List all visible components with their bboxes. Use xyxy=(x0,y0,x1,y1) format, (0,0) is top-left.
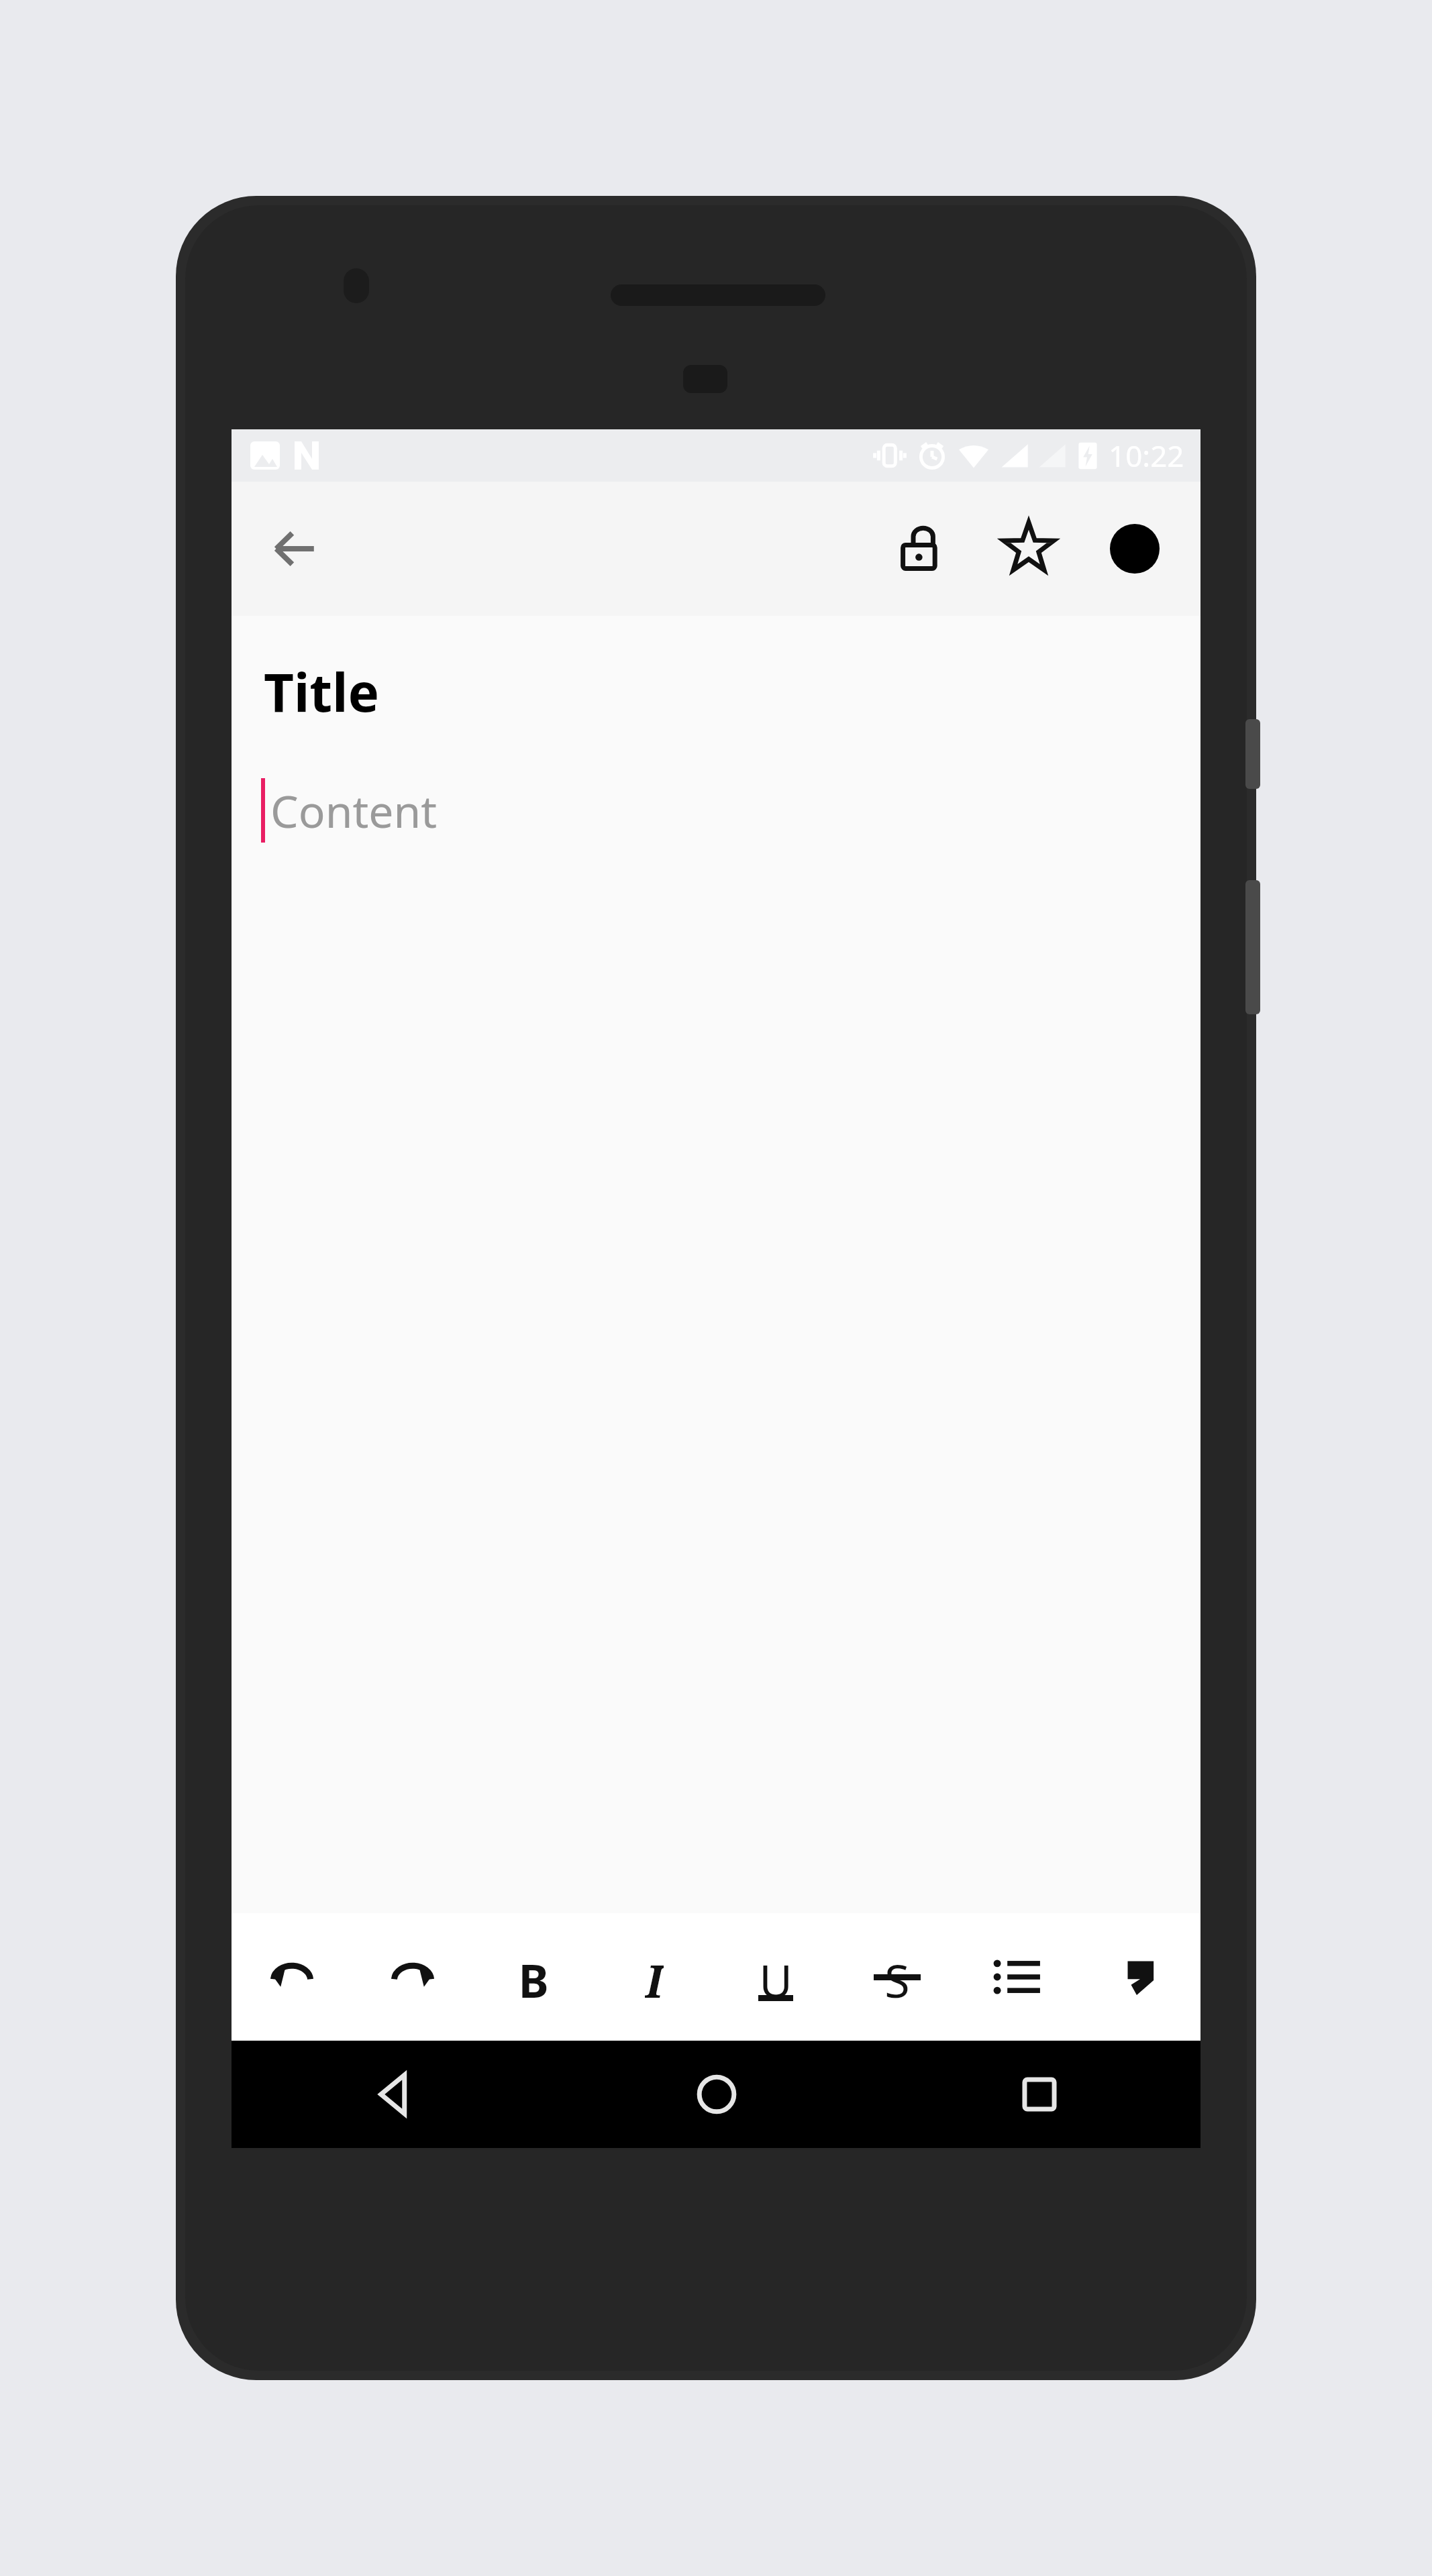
button[interactable]: Favorite xyxy=(982,502,1076,596)
button[interactable]: Title xyxy=(264,656,1168,727)
button[interactable]: Bold xyxy=(473,1913,594,2041)
staticText: B xyxy=(518,1949,549,2005)
staticText: I xyxy=(645,1949,664,2005)
button[interactable]: Italic xyxy=(594,1913,715,2041)
staticText: S xyxy=(884,1949,910,2005)
button[interactable]: Redo xyxy=(352,1913,473,2041)
button[interactable]: Bulleted list xyxy=(958,1913,1079,2041)
button[interactable]: Recents xyxy=(878,2041,1200,2148)
staticText: Content xyxy=(270,780,438,841)
button[interactable]: Home xyxy=(555,2041,878,2148)
button[interactable]: Quote xyxy=(1079,1913,1200,2041)
staticText: Title xyxy=(264,656,379,727)
staticText: 10:22 xyxy=(1109,435,1184,476)
button[interactable]: Back xyxy=(232,2041,555,2148)
staticText: U xyxy=(759,1949,792,2005)
button[interactable]: Undo xyxy=(232,1913,352,2041)
button[interactable]: Note color xyxy=(1088,502,1182,596)
button[interactable]: Strikethrough xyxy=(836,1913,958,2041)
button[interactable]: Underline xyxy=(715,1913,836,2041)
button[interactable]: Unlock note xyxy=(876,502,970,596)
button[interactable]: Back xyxy=(245,499,344,598)
button[interactable]: Content xyxy=(261,778,1200,843)
